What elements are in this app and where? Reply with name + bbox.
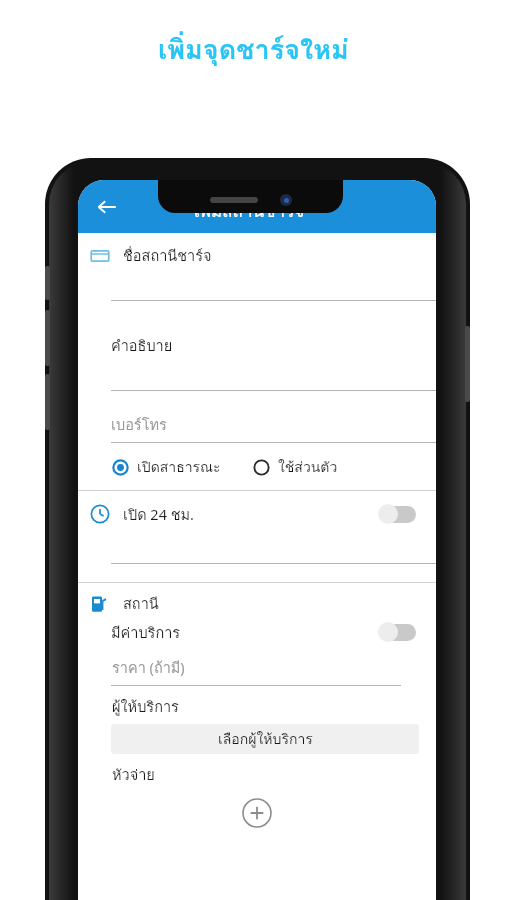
staticText: มีค่าบริการ (111, 621, 181, 644)
staticText: เพิ่มสถานีชาร์จ (194, 197, 305, 224)
staticText: เปิด 24 ชม. (123, 503, 194, 526)
staticText: ชื่อสถานีชาร์จ (123, 244, 212, 267)
button[interactable]: ใช้ส่วนตัว (253, 456, 338, 478)
staticText: เพิ่มจุดชาร์จใหม่ (158, 28, 349, 71)
staticText: เบอร์โทร (111, 413, 167, 436)
staticText: ใช้ส่วนตัว (278, 456, 338, 478)
button[interactable]: เลือกผู้ให้บริการ (111, 724, 419, 754)
button[interactable]: เปิดสาธารณะ (112, 456, 221, 478)
staticText: สถานี (123, 592, 159, 615)
staticText: ราคา (ถ้ามี) (112, 656, 185, 679)
staticText: หัวจ่าย (112, 763, 155, 786)
staticText: คำอธิบาย (111, 334, 173, 357)
staticText: เปิดสาธารณะ (137, 456, 221, 478)
button[interactable]: Back (87, 187, 127, 227)
staticText: เลือกผู้ให้บริการ (218, 728, 313, 750)
button[interactable]: Add connector (240, 796, 274, 830)
button[interactable]: Toggle (378, 622, 418, 642)
staticText: ผู้ให้บริการ (112, 695, 179, 718)
button[interactable]: Toggle (378, 504, 418, 524)
